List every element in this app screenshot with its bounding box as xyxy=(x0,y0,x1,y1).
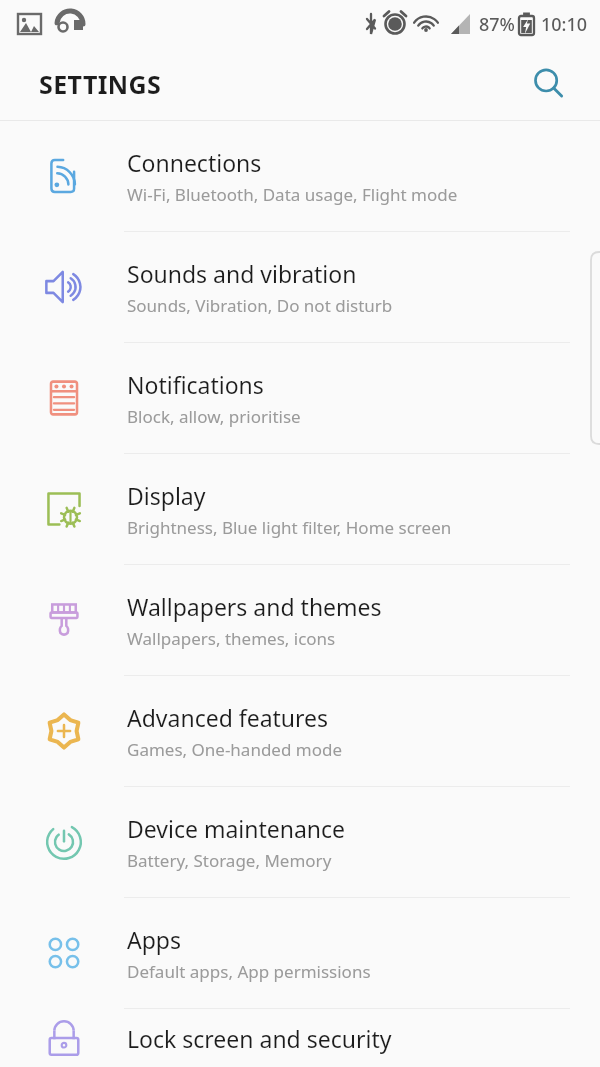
button[interactable]: Sounds and vibration xyxy=(0,232,600,342)
staticText: Display xyxy=(127,480,206,511)
staticText: Wallpapers and themes xyxy=(127,591,382,622)
button[interactable]: Notifications xyxy=(0,343,600,453)
staticText: Games, One-handed mode xyxy=(127,738,343,761)
button[interactable]: Display xyxy=(0,454,600,564)
staticText: Default apps, App permissions xyxy=(127,960,371,983)
button[interactable]: Advanced features xyxy=(0,676,600,786)
staticText: Wi-Fi, Bluetooth, Data usage, Flight mod… xyxy=(127,183,458,206)
staticText: Battery, Storage, Memory xyxy=(127,849,332,872)
staticText: Notifications xyxy=(127,369,264,400)
button[interactable]: Device maintenance xyxy=(0,787,600,897)
staticText: Brightness, Blue light filter, Home scre… xyxy=(127,516,452,539)
staticText: SETTINGS xyxy=(39,67,162,101)
staticText: Sounds and vibration xyxy=(127,258,357,289)
staticText: Apps xyxy=(127,924,182,955)
staticText: Sounds, Vibration, Do not disturb xyxy=(127,294,393,317)
button[interactable]: Connections xyxy=(0,121,600,231)
button[interactable]: Wallpapers and themes xyxy=(0,565,600,675)
button[interactable]: Apps xyxy=(0,898,600,1008)
staticText: Lock screen and security xyxy=(127,1023,392,1054)
staticText: Advanced features xyxy=(127,702,329,733)
button[interactable]: Lock screen and security xyxy=(0,1009,600,1067)
button[interactable]: Search xyxy=(526,61,572,107)
staticText: 10:10 xyxy=(541,12,588,37)
staticText: Block, allow, prioritise xyxy=(127,405,301,428)
staticText: 87% xyxy=(479,12,515,37)
staticText: Wallpapers, themes, icons xyxy=(127,627,336,650)
staticText: Connections xyxy=(127,147,262,178)
staticText: Device maintenance xyxy=(127,813,346,844)
